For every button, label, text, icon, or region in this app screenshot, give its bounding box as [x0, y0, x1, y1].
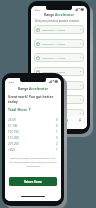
staticText: 151-200: [8, 136, 19, 140]
staticText: 3/20/2024 | 7 Shots: [42, 98, 66, 101]
staticText: 3/20/2024 | 7 Shots: [42, 84, 66, 87]
button[interactable]: 3/20/2024 | 7 Shots: [34, 25, 84, 34]
staticText: 2: [56, 142, 58, 146]
staticText: 3/20/2024 | 7 Shots: [42, 28, 66, 31]
staticText: 3: [56, 136, 58, 140]
button[interactable]: 3/20/2024 | 7 Shots: [34, 39, 84, 48]
staticText: 3/20/2024 | 7 Shots: [42, 112, 66, 115]
staticText: 1: [56, 130, 58, 134]
button[interactable]: Profile: [73, 116, 87, 129]
staticText: Accelerator: [55, 12, 74, 16]
staticText: 25-50: [8, 118, 16, 122]
staticText: >250: [8, 148, 15, 152]
button[interactable]: Return Home: [9, 177, 57, 186]
staticText: 101-150: [8, 130, 19, 134]
staticText: Return Home: [24, 180, 42, 184]
button[interactable]: 3/20/2024 | 7 Shots: [34, 109, 84, 118]
staticText: Range: [44, 12, 55, 16]
staticText: 1: [56, 148, 58, 152]
staticText: 9:41: [9, 80, 14, 83]
button[interactable]: 3/20/2024 | 7 Shots: [34, 123, 84, 129]
staticText: 3/20/2024 | 7 Shots: [42, 70, 66, 73]
button[interactable]: Home: [59, 116, 73, 129]
button[interactable]: Stats: [45, 116, 59, 129]
button[interactable]: 3/20/2024 | 7 Shots: [34, 95, 84, 104]
staticText: 51-100: [8, 124, 18, 128]
staticText: Accelerator: [29, 86, 48, 90]
staticText: 9:41: [35, 8, 40, 11]
staticText: Total Shots: 7: [8, 107, 31, 112]
staticText: View your previous practice sessions: [35, 19, 80, 23]
button[interactable]: 3/20/2024 | 7 Shots: [34, 81, 84, 90]
staticText: 3/20/2024 | 7 Shots: [42, 125, 66, 128]
staticText: Great work! You got better today: [8, 94, 54, 104]
staticText: 0: [56, 118, 58, 122]
button[interactable]: 3/20/2024 | 7 Shots: [34, 67, 84, 76]
staticText: 3/20/2024 | 7 Shots: [42, 56, 66, 59]
staticText: 201-250: [8, 142, 19, 146]
staticText: 0: [56, 124, 58, 128]
button[interactable]: 3/20/2024 | 7 Shots: [34, 53, 84, 62]
staticText: Based on today's shot distribution, you …: [9, 156, 57, 168]
staticText: Range: [18, 86, 29, 90]
staticText: 3/20/2024 | 7 Shots: [42, 42, 66, 45]
